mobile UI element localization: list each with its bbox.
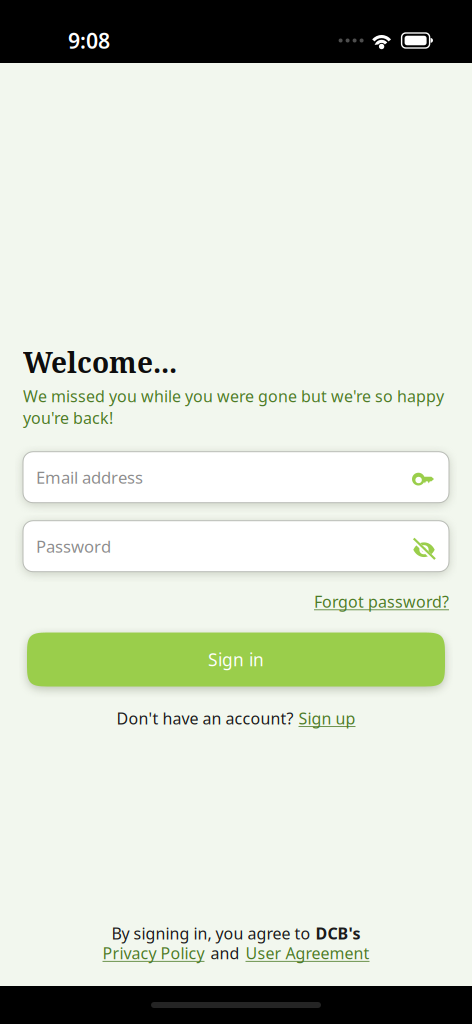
staticText: Password [36,535,111,558]
staticText: Don't have an account? [116,707,293,729]
staticText: Email address [36,466,143,489]
staticText: Welcome... [23,343,177,381]
button[interactable]: Sign in [27,632,445,686]
staticText: Sign up [298,707,355,729]
staticText: By signing in, you agree to [111,922,310,944]
staticText: DCB's [315,922,360,944]
staticText: Privacy Policy [102,942,204,964]
staticText: Sign in [208,648,264,671]
staticText: We missed you while you were gone but we… [23,385,444,429]
staticText: User Agreement [245,942,369,964]
button[interactable]: Privacy Policy [102,942,204,964]
staticText: 9:08 [68,26,110,55]
staticText: and [210,942,239,964]
button[interactable]: Forgot password? [314,591,449,612]
button[interactable]: User Agreement [245,942,369,964]
button[interactable]: Sign up [298,707,355,729]
staticText: Forgot password? [314,591,449,612]
